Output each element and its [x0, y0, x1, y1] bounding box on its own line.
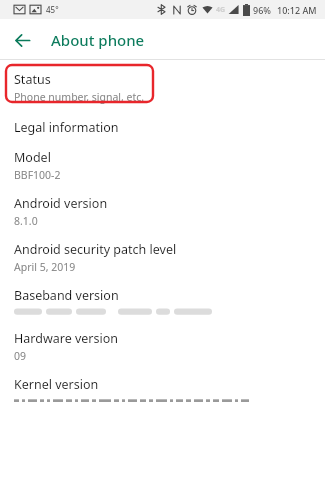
staticText: Legal information [14, 119, 119, 136]
staticText: Baseband version [14, 287, 119, 304]
staticText: 4G [216, 5, 226, 15]
button[interactable]: Navigate up [6, 24, 38, 56]
staticText: Android version [14, 195, 108, 212]
staticText: BBF100-2 [14, 168, 61, 182]
button[interactable]: Model [0, 136, 325, 182]
staticText: 09 [14, 349, 27, 363]
staticText: 10:12 AM [277, 4, 317, 16]
staticText: 8.1.0 [14, 214, 38, 228]
staticText: Model [14, 149, 51, 166]
staticText: About phone [51, 30, 145, 50]
staticText: Status [14, 71, 51, 88]
button[interactable]: Kernel version [0, 363, 325, 402]
staticText: 96% [253, 4, 271, 16]
staticText: Kernel version [14, 376, 99, 393]
button[interactable]: Status [0, 60, 325, 110]
staticText: Hardware version [14, 330, 118, 347]
button[interactable]: Android version [0, 182, 325, 228]
button[interactable]: Baseband version [0, 274, 325, 317]
staticText: April 5, 2019 [14, 260, 76, 274]
button[interactable]: Hardware version [0, 317, 325, 363]
button[interactable]: Legal information [0, 110, 325, 136]
button[interactable]: Android security patch level [0, 228, 325, 274]
staticText: Phone number, signal, etc. [14, 90, 145, 104]
staticText: Android security patch level [14, 241, 177, 258]
staticText: 45° [46, 4, 59, 15]
